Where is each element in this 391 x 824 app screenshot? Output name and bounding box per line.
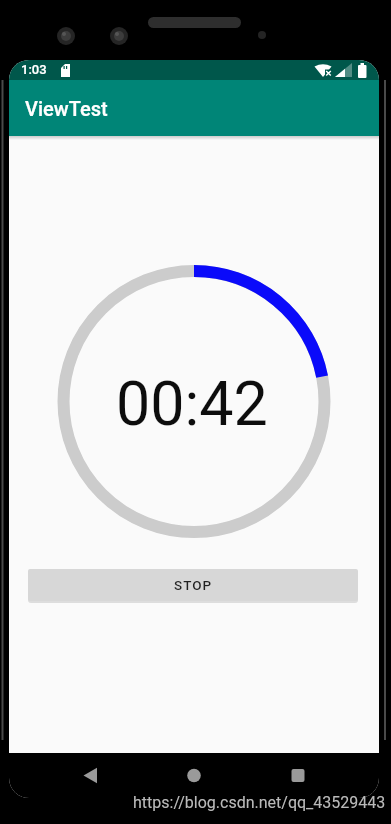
staticText: 00:42 (116, 368, 268, 439)
staticText: https://blog.csdn.net/qq_43529443 (133, 793, 386, 812)
staticText: 1:03 (21, 62, 47, 77)
button[interactable] (133, 753, 256, 798)
button[interactable]: STOP (28, 569, 358, 601)
staticText: STOP (174, 577, 213, 593)
staticText: ViewTest (25, 97, 108, 120)
button[interactable] (256, 753, 379, 798)
button[interactable] (9, 753, 133, 798)
